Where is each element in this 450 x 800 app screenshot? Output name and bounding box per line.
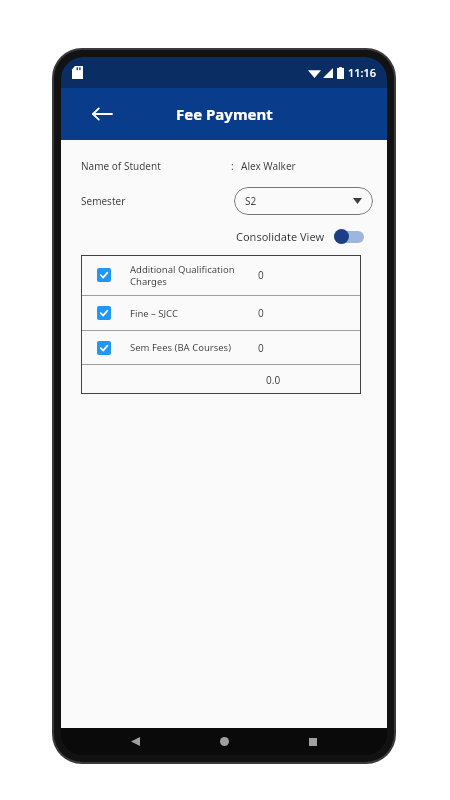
staticText: 11:16 bbox=[348, 65, 377, 80]
button[interactable]: Selected: Additional Qualification Charg… bbox=[81, 255, 361, 295]
staticText: Consolidate View bbox=[236, 229, 325, 244]
staticText: 0 bbox=[258, 268, 264, 282]
staticText: Semester bbox=[81, 194, 126, 208]
button[interactable]: Selected: Fine – SJCC bbox=[81, 296, 361, 330]
button[interactable]: Recent apps bbox=[298, 728, 328, 755]
staticText: Sem Fees (BA Courses) bbox=[130, 341, 232, 354]
staticText: Additional Qualification Charges bbox=[130, 263, 235, 288]
button[interactable]: Back bbox=[120, 728, 150, 755]
staticText: 0.0 bbox=[266, 373, 281, 387]
button[interactable]: Consolidate View bbox=[61, 229, 364, 244]
other: Selected: Sem Fees (BA Courses) bbox=[97, 341, 111, 355]
button[interactable]: S2 bbox=[234, 187, 373, 215]
button[interactable]: Selected: Sem Fees (BA Courses) bbox=[81, 331, 361, 364]
staticText: Fine – SJCC bbox=[130, 307, 178, 320]
button[interactable]: Back bbox=[85, 97, 119, 131]
staticText: Alex Walker bbox=[241, 159, 296, 173]
button[interactable]: Home bbox=[209, 728, 239, 755]
other: Selected: Additional Qualification Charg… bbox=[97, 268, 111, 282]
staticText: 0 bbox=[258, 341, 264, 355]
other: Selected: Fine – SJCC bbox=[97, 306, 111, 320]
staticText: Fee Payment bbox=[176, 104, 273, 124]
staticText: : bbox=[231, 159, 234, 173]
staticText: 0 bbox=[258, 306, 264, 320]
staticText: Name of Student bbox=[81, 159, 161, 173]
staticText: S2 bbox=[245, 194, 257, 208]
